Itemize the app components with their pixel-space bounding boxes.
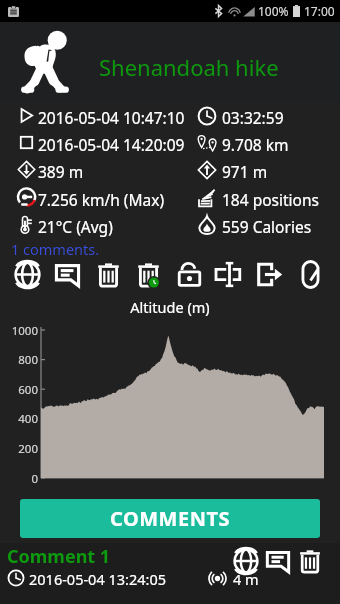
staticText: 600 (0, 382, 38, 398)
button[interactable]: Delete comment (294, 545, 326, 577)
staticText: 17:00 (304, 3, 335, 19)
staticText: 21°C (Avg) (38, 216, 113, 237)
button[interactable]: Lock (171, 256, 207, 292)
staticText: 1 comments. (11, 239, 100, 259)
button[interactable]: Show on map (230, 545, 262, 577)
staticText: 2016-05-04 10:47:10 (38, 107, 185, 128)
staticText: 0 (0, 471, 38, 487)
button[interactable]: Attach (292, 256, 328, 292)
staticText: 200 (0, 441, 38, 457)
staticText: 1000 (0, 323, 38, 339)
button[interactable]: 1 comments. (11, 239, 100, 259)
staticText: Comment 1 (7, 544, 111, 569)
staticText: 400 (0, 411, 38, 427)
staticText: 559 Calories (222, 216, 312, 237)
button[interactable]: Export (251, 256, 287, 292)
staticText: Altitude (m) (0, 297, 340, 317)
staticText: 03:32:59 (222, 107, 284, 128)
button[interactable]: Comments (49, 256, 85, 292)
staticText: 971 m (222, 161, 268, 182)
staticText: 184 positions (222, 189, 319, 210)
button[interactable]: Edit comment (262, 545, 294, 577)
staticText: 9.708 km (222, 134, 289, 155)
staticText: 4 m (233, 569, 259, 589)
button[interactable]: COMMENTS (20, 499, 320, 538)
staticText: 100% (258, 3, 289, 19)
staticText: 2016-05-04 14:20:09 (38, 134, 185, 155)
staticText: 389 m (38, 161, 84, 182)
staticText: COMMENTS (110, 505, 230, 532)
staticText: 800 (0, 352, 38, 368)
button[interactable]: Split track (211, 256, 247, 292)
staticText: Shenandoah hike (99, 52, 279, 82)
staticText: 7.256 km/h (Max) (38, 189, 165, 210)
button[interactable]: Delete recent (130, 256, 166, 292)
button[interactable]: Map (9, 256, 45, 292)
button[interactable]: Delete (90, 256, 126, 292)
staticText: 2016-05-04 13:24:05 (29, 569, 166, 589)
